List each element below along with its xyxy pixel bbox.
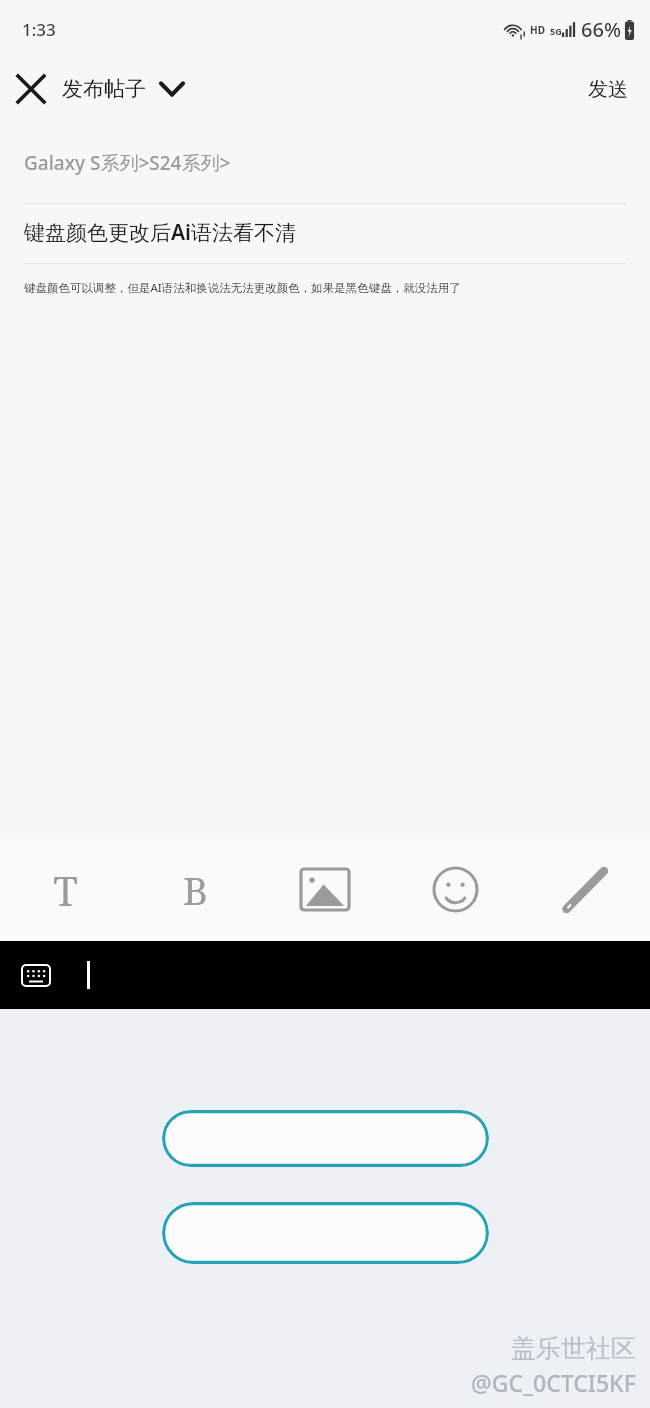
staticText: B: [183, 864, 208, 916]
button[interactable]: Close: [0, 58, 62, 120]
staticText: 发布帖子: [62, 76, 146, 102]
button[interactable]: 取消: [162, 1202, 489, 1264]
button[interactable]: 发送: [566, 67, 650, 112]
staticText: 键盘颜色可以调整，但是AI语法和换说法无法更改颜色，如果是黑色键盘，就没法用了: [24, 280, 461, 296]
button[interactable]: Insert image: [260, 838, 390, 941]
staticText: 发送: [588, 77, 628, 102]
staticText: 盖乐世社区: [511, 1333, 636, 1364]
button[interactable]: Hide keyboard: [20, 960, 52, 990]
button[interactable]: Emoji: [390, 838, 520, 941]
staticText: 66%: [581, 16, 621, 43]
staticText: 1:33: [22, 18, 56, 41]
staticText: HD: [530, 23, 545, 37]
staticText: T: [53, 863, 78, 917]
staticText: 5G: [550, 25, 562, 37]
button[interactable]: Text style: [0, 838, 130, 941]
button[interactable]: 发布帖子: [62, 76, 184, 102]
staticText: @GC_0CTCI5KF: [471, 1367, 636, 1398]
button[interactable]: 确定: [162, 1110, 489, 1167]
staticText: 键盘颜色更改后Ai语法看不清: [24, 218, 297, 247]
button[interactable]: Draw: [520, 838, 650, 941]
button[interactable]: Bold: [130, 838, 260, 941]
button[interactable]: Galaxy S系列>S24系列>: [24, 150, 231, 176]
